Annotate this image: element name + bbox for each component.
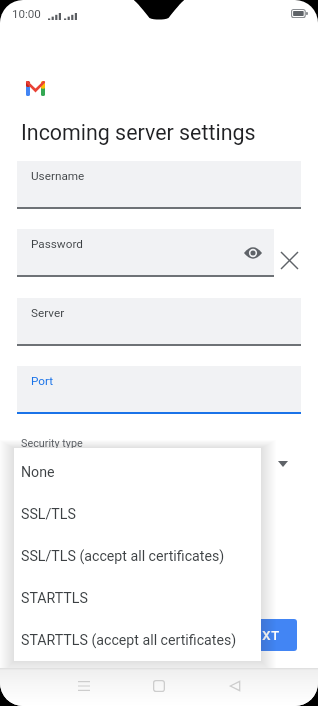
button[interactable]: SSL/TLS	[14, 493, 261, 535]
staticText: SSL/TLS	[21, 506, 76, 523]
staticText: None	[21, 464, 55, 481]
button[interactable]: NEXT	[227, 619, 297, 651]
button[interactable]: Clear password	[276, 247, 302, 273]
staticText: Incoming server settings	[21, 120, 256, 145]
button[interactable]: Open security type menu	[272, 453, 294, 475]
button[interactable]: Home	[139, 667, 179, 705]
button[interactable]: SSL/TLS (accept all certificates)	[14, 535, 261, 577]
button[interactable]: STARTTLS	[14, 577, 261, 619]
button[interactable]: Server	[17, 298, 301, 346]
staticText: NEXT	[244, 628, 280, 643]
staticText: 10:00	[12, 7, 41, 21]
staticText: Server	[31, 306, 65, 320]
button[interactable]: Back	[215, 667, 255, 705]
button[interactable]: Password	[17, 229, 274, 277]
staticText: Port	[31, 374, 54, 388]
button[interactable]: Show password	[241, 241, 265, 265]
staticText: SSL/TLS (accept all certificates)	[21, 548, 225, 565]
button[interactable]: Username	[17, 161, 301, 209]
button[interactable]: STARTTLS (accept all certificates)	[14, 619, 261, 661]
button[interactable]: Port	[17, 366, 301, 414]
staticText: Security type	[21, 437, 83, 450]
staticText: STARTTLS (accept all certificates)	[21, 632, 237, 649]
staticText: STARTTLS	[21, 590, 88, 607]
staticText: Password	[31, 237, 83, 251]
staticText: Username	[31, 169, 85, 183]
button[interactable]: Recents	[64, 667, 104, 705]
button[interactable]: None	[14, 451, 261, 493]
